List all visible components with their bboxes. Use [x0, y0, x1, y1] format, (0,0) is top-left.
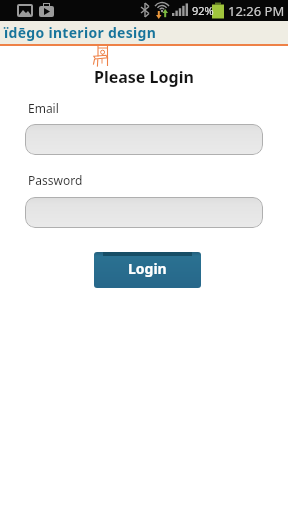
staticText: Password [28, 172, 83, 188]
button[interactable]: Login [94, 252, 201, 288]
button[interactable]: ïdēgo interior design [0, 21, 288, 44]
button[interactable] [25, 124, 263, 155]
staticText: Login [128, 259, 167, 278]
staticText: 12:26 PM [228, 2, 285, 20]
button[interactable] [25, 197, 263, 228]
staticText: ïdēgo interior design [4, 23, 157, 42]
staticText: Email [28, 100, 59, 116]
staticText: Please Login [94, 66, 194, 88]
staticText: 92% [192, 3, 214, 18]
